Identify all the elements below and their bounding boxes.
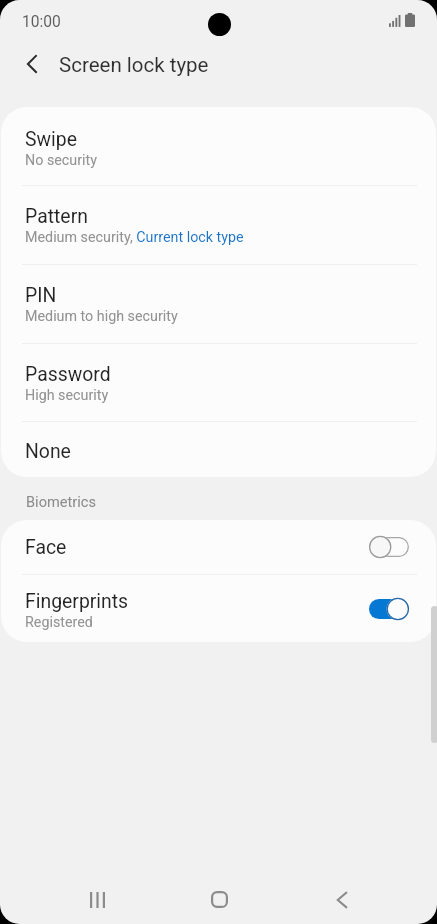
staticText: Biometrics — [26, 493, 96, 510]
button[interactable]: Password — [1, 344, 436, 421]
staticText: High security — [25, 387, 109, 404]
button[interactable]: Face — [1, 520, 436, 574]
button[interactable]: Fingerprints — [1, 575, 436, 642]
staticText: Pattern — [25, 205, 88, 228]
button[interactable]: Navigate up — [14, 49, 44, 79]
button[interactable]: Turn off — [369, 597, 409, 621]
staticText: None — [25, 440, 71, 463]
staticText: Screen lock type — [59, 53, 209, 77]
staticText: No security — [25, 152, 97, 169]
button[interactable]: Swipe — [1, 107, 436, 185]
staticText: Face — [25, 536, 67, 559]
button[interactable]: Recent apps — [73, 875, 122, 924]
staticText: 10:00 — [22, 13, 61, 31]
staticText: Password — [25, 363, 111, 386]
button[interactable]: Pattern — [1, 186, 436, 264]
button[interactable]: Back — [317, 875, 366, 924]
staticText: Swipe — [25, 128, 77, 151]
staticText: Medium security, Current lock type — [25, 229, 244, 246]
staticText: Medium to high security — [25, 308, 178, 325]
staticText: Registered — [25, 614, 93, 631]
staticText: Fingerprints — [25, 590, 129, 613]
button[interactable]: Home — [195, 875, 244, 924]
staticText: PIN — [25, 284, 57, 307]
button[interactable]: None — [1, 422, 436, 477]
button[interactable]: PIN — [1, 265, 436, 343]
button[interactable]: Turn on — [369, 535, 409, 559]
